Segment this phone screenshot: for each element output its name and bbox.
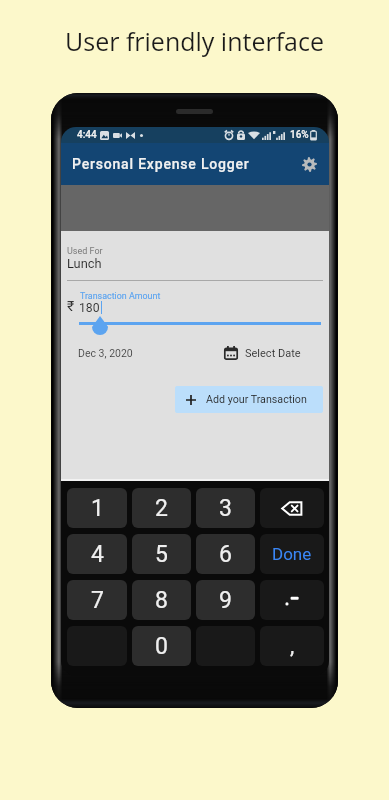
button[interactable]: 0	[132, 626, 191, 666]
button[interactable]: 5	[132, 534, 191, 574]
button[interactable]: 7	[67, 580, 127, 620]
button[interactable]: Comma	[260, 626, 324, 666]
staticText: Dec 3, 2020	[78, 347, 133, 359]
staticText: 3	[219, 495, 232, 522]
button[interactable]: Dot and dash	[260, 580, 324, 620]
staticText: User friendly interface	[65, 24, 324, 58]
button[interactable]: 9	[196, 580, 255, 620]
button[interactable]: Add your Transaction	[175, 386, 323, 413]
staticText: Transaction Amount	[80, 291, 161, 301]
button[interactable]: 2	[132, 488, 191, 528]
staticText: 4:44	[77, 129, 97, 141]
button[interactable]: 3	[196, 488, 255, 528]
staticText: ₹	[67, 298, 75, 314]
staticText: ,	[290, 633, 295, 659]
button[interactable]: 4	[67, 534, 127, 574]
staticText: 16%	[290, 129, 309, 141]
staticText: Personal Expense Logger	[72, 156, 250, 172]
staticText: 4	[91, 541, 104, 568]
staticText: 180	[79, 301, 100, 315]
button[interactable]: 6	[196, 534, 255, 574]
staticText: Used For	[67, 246, 103, 257]
button[interactable]: Done	[260, 534, 324, 574]
staticText: 0	[155, 633, 168, 660]
staticText: 1	[91, 495, 104, 522]
button[interactable]: 8	[132, 580, 191, 620]
staticText: Done	[272, 544, 312, 564]
button[interactable]: Backspace	[260, 488, 324, 528]
staticText: 9	[219, 587, 232, 614]
staticText: 2	[155, 495, 168, 522]
staticText: 6	[219, 541, 232, 568]
button[interactable]: Settings	[296, 151, 322, 177]
staticText: Select Date	[245, 347, 301, 360]
staticText: Add your Transaction	[206, 393, 307, 406]
button[interactable]: Select Date	[224, 346, 301, 360]
staticText: Lunch	[67, 256, 102, 271]
staticText: 7	[91, 587, 104, 614]
staticText: 5	[155, 541, 168, 568]
staticText: 8	[155, 587, 168, 614]
button[interactable]: 1	[67, 488, 127, 528]
